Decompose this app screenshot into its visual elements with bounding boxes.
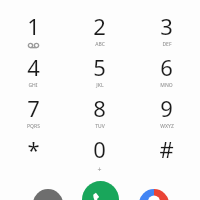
staticText: 6	[160, 52, 173, 82]
button[interactable]: Contacts	[139, 189, 169, 200]
button[interactable]: 1	[0, 8, 66, 49]
staticText: 7	[27, 93, 40, 123]
staticText: #	[159, 134, 174, 164]
staticText: MNO	[160, 82, 173, 89]
button[interactable]: *	[0, 131, 66, 173]
button[interactable]: 3	[133, 8, 200, 49]
button[interactable]: 9	[133, 90, 200, 131]
staticText: *	[27, 134, 40, 164]
staticText: 9	[160, 93, 173, 123]
staticText: 5	[93, 52, 106, 82]
button[interactable]: #	[133, 131, 200, 173]
staticText: +	[97, 165, 102, 173]
staticText: JKL	[96, 82, 104, 89]
button[interactable]: Recent calls	[33, 189, 63, 200]
staticText: 0	[93, 134, 106, 164]
staticText: 2	[93, 11, 106, 41]
staticText: TUV	[95, 123, 105, 130]
staticText: PQRS	[27, 123, 40, 130]
staticText: DEF	[162, 41, 172, 48]
staticText: 1	[27, 11, 40, 41]
staticText: ABC	[95, 41, 105, 48]
staticText: 8	[93, 93, 106, 123]
staticText: 4	[27, 52, 40, 82]
staticText: GHI	[28, 82, 38, 89]
button[interactable]: 5	[66, 49, 133, 90]
button[interactable]: 7	[0, 90, 66, 131]
button[interactable]: 4	[0, 49, 66, 90]
staticText: WXYZ	[160, 123, 174, 130]
button[interactable]: 6	[133, 49, 200, 90]
staticText: 3	[160, 11, 173, 41]
button[interactable]: 0	[66, 131, 133, 173]
button[interactable]: Call	[82, 181, 119, 200]
button[interactable]: 2	[66, 8, 133, 49]
button[interactable]: 8	[66, 90, 133, 131]
